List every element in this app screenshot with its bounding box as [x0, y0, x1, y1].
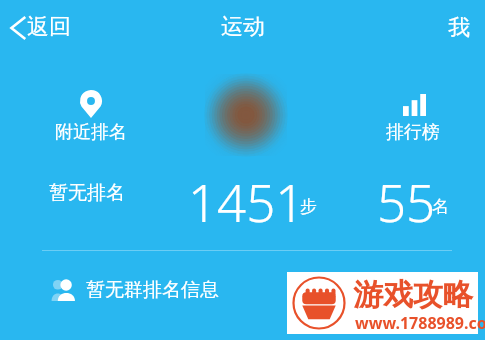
staticText: 名	[432, 196, 449, 217]
staticText: 我	[448, 14, 470, 42]
other: Leaderboard	[403, 94, 426, 116]
staticText: www.1788989.com	[355, 312, 485, 334]
button[interactable]: 返回	[4, 6, 90, 50]
staticText: 排行榜	[352, 121, 474, 147]
other: Nearby ranking	[80, 90, 102, 118]
staticText: 步	[300, 196, 317, 217]
staticText: 暂无群排名信息	[86, 278, 219, 302]
button[interactable]: Group	[42, 266, 272, 314]
staticText: 游戏攻略	[353, 276, 473, 314]
staticText: 55	[377, 167, 436, 236]
staticText: 附近排名	[30, 121, 152, 147]
staticText: 返回	[27, 13, 71, 41]
staticText: 运动	[221, 13, 265, 41]
button[interactable]: 我	[437, 6, 481, 50]
button[interactable]: Leaderboard	[352, 88, 474, 150]
staticText: 1451	[188, 167, 305, 236]
button[interactable]: Nearby ranking	[30, 88, 152, 150]
other: Group	[50, 279, 76, 301]
staticText: 暂无排名	[49, 181, 125, 205]
